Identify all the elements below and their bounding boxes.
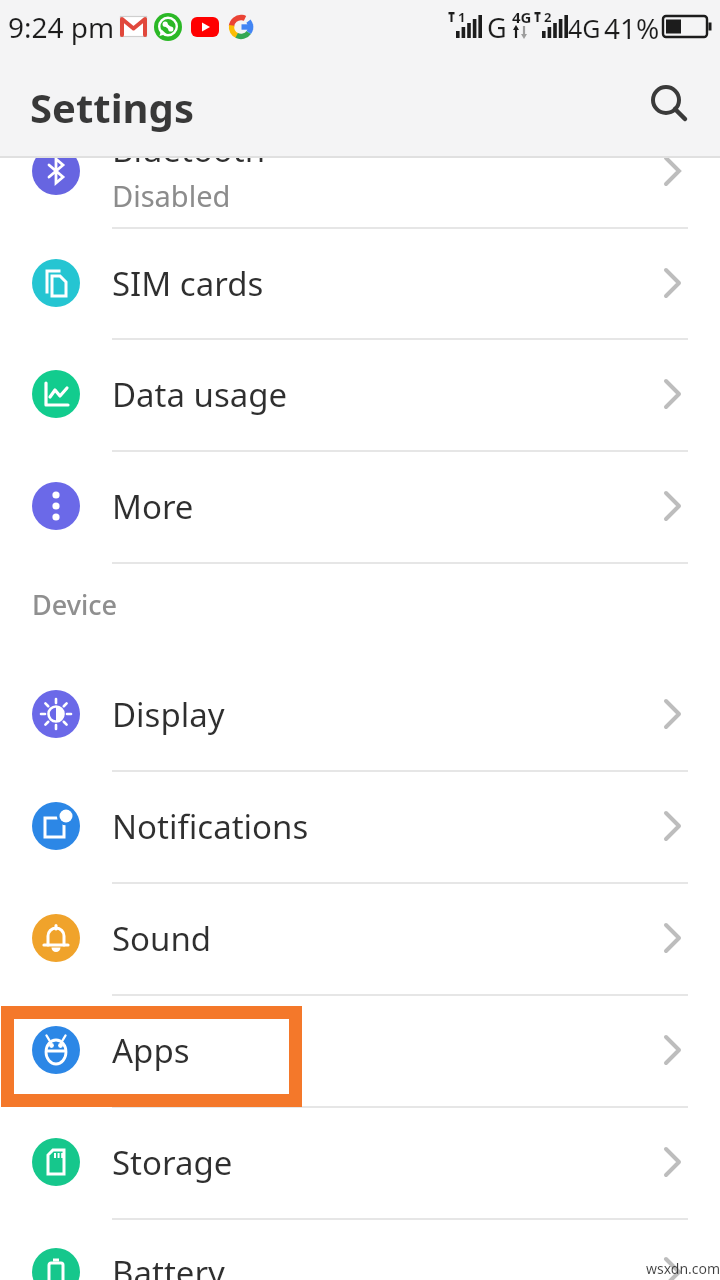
staticText: 4G [512, 7, 532, 27]
staticText: 4G [568, 11, 601, 45]
staticText: Sound [112, 916, 212, 961]
button[interactable]: Data usage [0, 338, 720, 450]
staticText: wsxdn.com [646, 1259, 720, 1278]
staticText: Battery [112, 1250, 225, 1280]
button[interactable]: SIM cards [0, 227, 720, 339]
staticText: Device [32, 586, 117, 623]
staticText: Notifications [112, 804, 309, 849]
staticText: Settings [30, 80, 194, 134]
button[interactable]: Sound [0, 882, 720, 994]
button[interactable]: Battery [0, 1216, 720, 1280]
staticText: Display [112, 692, 225, 737]
button[interactable]: Display [0, 658, 720, 770]
staticText: More [112, 484, 194, 529]
staticText: 9:24 pm [8, 8, 115, 46]
button[interactable] [640, 76, 696, 132]
button[interactable]: Storage [0, 1106, 720, 1218]
button[interactable]: Bluetooth [0, 115, 720, 227]
staticText: 1 [458, 8, 466, 26]
staticText: Data usage [112, 372, 288, 417]
staticText: G [487, 9, 507, 46]
button[interactable]: More [0, 450, 720, 562]
staticText: SIM cards [112, 261, 264, 306]
staticText: 41% [604, 9, 660, 47]
staticText: 2 [544, 8, 552, 26]
staticText: Apps [112, 1028, 190, 1073]
button[interactable]: Notifications [0, 770, 720, 882]
staticText: Storage [112, 1140, 233, 1185]
button[interactable]: Apps [0, 994, 720, 1106]
staticText: Disabled [112, 176, 231, 215]
staticText: Bluetooth [112, 127, 266, 172]
